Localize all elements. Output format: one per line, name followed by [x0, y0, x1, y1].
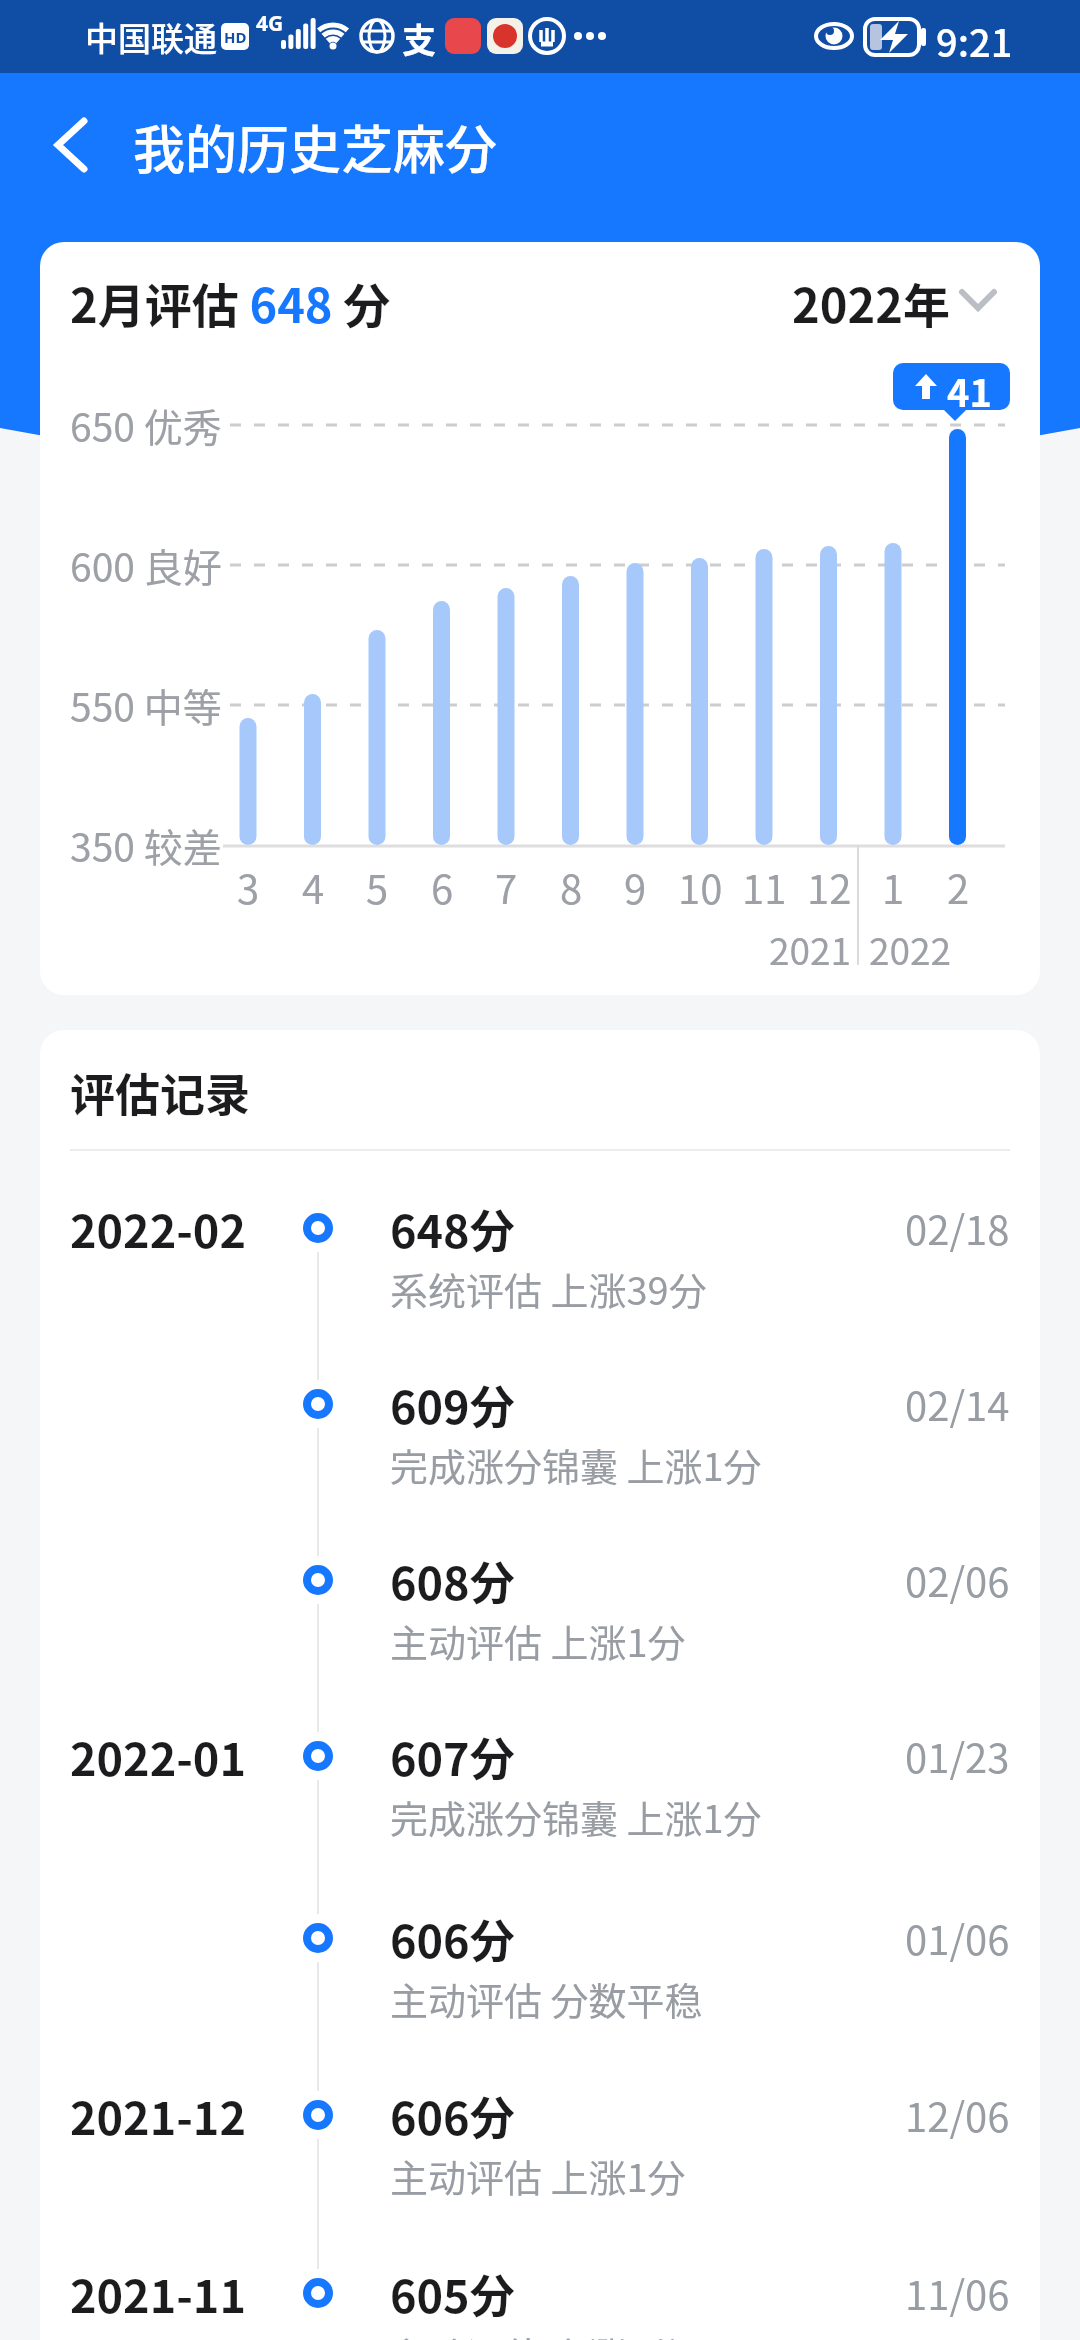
staticText: 8	[560, 858, 583, 916]
staticText: 02/06	[905, 1551, 1010, 1609]
staticText: 41	[947, 363, 992, 410]
staticText: 9	[624, 858, 647, 916]
staticText: 系统评估 上涨39分	[390, 1261, 707, 1316]
staticText: 4G	[256, 9, 284, 38]
staticText: 2021-11	[70, 2261, 246, 2326]
staticText: 607分	[390, 1724, 515, 1789]
staticText: 2022-01	[70, 1724, 246, 1789]
staticText: 2022-02	[70, 1196, 246, 1261]
staticText: 350 较差	[70, 817, 222, 873]
staticText: 01/06	[905, 1909, 1010, 1967]
staticText: 2022年	[792, 268, 950, 336]
staticText: 648分	[390, 1196, 515, 1261]
staticText: 6	[431, 858, 454, 916]
staticText: 完成涨分锦囊 上涨1分	[390, 1789, 762, 1844]
staticText: 2021	[769, 922, 852, 974]
staticText: 11/06	[905, 2264, 1010, 2322]
staticText: 609分	[390, 1372, 515, 1437]
staticText: 608分	[390, 1548, 515, 1613]
staticText: 1	[882, 858, 905, 916]
staticText: 完成涨分锦囊 上涨1分	[390, 1437, 762, 1492]
staticText: 支	[402, 14, 436, 58]
staticText: 10	[678, 858, 723, 916]
staticText: 605分	[390, 2261, 515, 2326]
button[interactable]: 2022年	[700, 262, 950, 342]
staticText: 主动评估 上涨1分	[390, 2148, 686, 2203]
staticText: 主动评估 分数平稳	[390, 1971, 703, 2026]
staticText: 2月评估 648 分	[70, 268, 391, 336]
button[interactable]	[40, 2027, 1040, 2203]
staticText: 中国联通	[85, 13, 217, 59]
button[interactable]	[40, 1140, 1040, 1316]
staticText: 4	[302, 858, 325, 916]
button[interactable]	[40, 1850, 1040, 2026]
staticText: 01/23	[905, 1727, 1010, 1785]
staticText: 550 中等	[70, 677, 222, 733]
staticText: 606分	[390, 2083, 515, 2148]
staticText: 我的历史芝麻分	[133, 109, 498, 184]
staticText: 主动评估 上涨1分	[390, 1613, 686, 1668]
staticText: 02/18	[905, 1199, 1010, 1257]
staticText: 12/06	[905, 2086, 1010, 2144]
staticText: 2	[947, 858, 970, 916]
staticText: 2021-12	[70, 2083, 246, 2148]
staticText: 主动评估 上涨1分	[390, 2326, 686, 2340]
staticText: HD	[224, 27, 247, 47]
staticText: 评估记录	[70, 1060, 251, 1125]
staticText: 5	[366, 858, 389, 916]
button[interactable]	[40, 2205, 1040, 2340]
staticText: 650 优秀	[70, 397, 222, 453]
button[interactable]	[40, 1316, 1040, 1492]
staticText: 11	[742, 858, 787, 916]
staticText: 3	[237, 858, 260, 916]
button[interactable]	[36, 105, 106, 185]
button[interactable]	[40, 1492, 1040, 1668]
staticText: 9:21	[936, 13, 1013, 59]
staticText: 2022	[869, 922, 952, 974]
staticText: 12	[807, 858, 852, 916]
staticText: 7	[495, 858, 518, 916]
staticText: 606分	[390, 1906, 515, 1971]
staticText: 600 良好	[70, 537, 222, 593]
staticText: 02/14	[905, 1375, 1010, 1433]
button[interactable]	[40, 1668, 1040, 1844]
